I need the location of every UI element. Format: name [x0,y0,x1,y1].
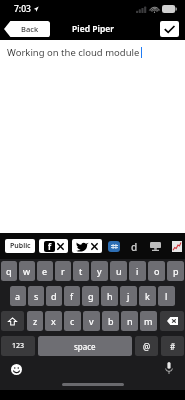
staticText: w [23,265,31,277]
button[interactable]: Link [108,241,120,252]
staticText: 7:03 [14,3,31,15]
staticText: @ [143,341,151,352]
staticText: space [74,341,96,352]
staticText: x [51,315,56,327]
staticText: q [6,265,12,277]
staticText: t [79,265,83,277]
staticText: Pied Piper [72,23,114,35]
button[interactable]: w [19,261,35,281]
staticText: p [173,265,179,277]
button[interactable]: s [28,286,44,306]
staticText: z [33,315,38,327]
button[interactable]: Display [149,240,162,252]
staticText: c [70,315,75,327]
staticText: Working on the cloud module [7,46,140,59]
staticText: f [48,241,52,252]
staticText: s [34,290,39,302]
staticText: u [116,265,122,277]
button[interactable]: a [10,286,26,306]
staticText: m [144,315,153,327]
staticText: i [136,265,139,277]
button[interactable]: b [102,311,119,331]
staticText: v [89,315,94,327]
button[interactable]: Shift [1,311,24,331]
button[interactable]: l [158,286,175,306]
staticText: a [15,290,21,302]
staticText: k [145,290,150,302]
staticText: n [127,315,133,327]
staticText: e [42,265,48,277]
staticText: Back [21,24,39,34]
staticText: h [107,290,113,302]
button[interactable]: c [64,311,81,331]
button[interactable]: Facebook [39,239,68,253]
button[interactable]: @ [135,336,158,356]
staticText: o [154,265,160,277]
button[interactable]: Emoji [9,362,23,376]
button[interactable]: Public [5,239,35,253]
staticText: j [127,290,130,302]
button[interactable]: z [27,311,43,331]
button[interactable]: Backspace [160,311,184,331]
button[interactable]: y [91,261,108,281]
button[interactable]: i [129,261,146,281]
button[interactable]: t [73,261,89,281]
staticText: l [165,290,168,302]
button[interactable]: n [121,311,138,331]
staticText: f [70,290,74,302]
button[interactable]: m [140,311,157,331]
button[interactable]: e [37,261,53,281]
button[interactable]: Back [4,21,50,37]
button[interactable]: Twitter [72,239,102,253]
button[interactable]: Dictate [162,361,176,376]
button[interactable]: o [148,261,165,281]
button[interactable]: f [64,286,80,306]
button[interactable]: k [139,286,156,306]
button[interactable]: 123 [1,336,35,356]
button[interactable]: g [82,286,99,306]
button[interactable]: x [45,311,62,331]
staticText: g [88,290,94,302]
staticText: b [108,315,114,327]
button[interactable]: r [55,261,71,281]
staticText: Public [10,241,31,251]
button[interactable]: space [38,336,132,356]
button[interactable]: # [161,336,184,356]
button[interactable]: h [101,286,118,306]
staticText: 123 [12,341,25,351]
staticText: d [51,290,57,302]
button[interactable]: Working on the cloud module [0,40,185,233]
staticText: # [170,341,176,352]
button[interactable]: u [110,261,127,281]
button[interactable]: Done [160,21,179,37]
button[interactable]: Stats [171,240,183,252]
button[interactable]: j [120,286,137,306]
staticText: r [61,265,65,277]
staticText: d [131,240,138,252]
button[interactable]: v [83,311,100,331]
staticText: y [97,265,102,277]
button[interactable]: p [167,261,184,281]
button[interactable]: q [1,261,17,281]
button[interactable]: Draft [129,240,140,252]
button[interactable]: d [46,286,62,306]
